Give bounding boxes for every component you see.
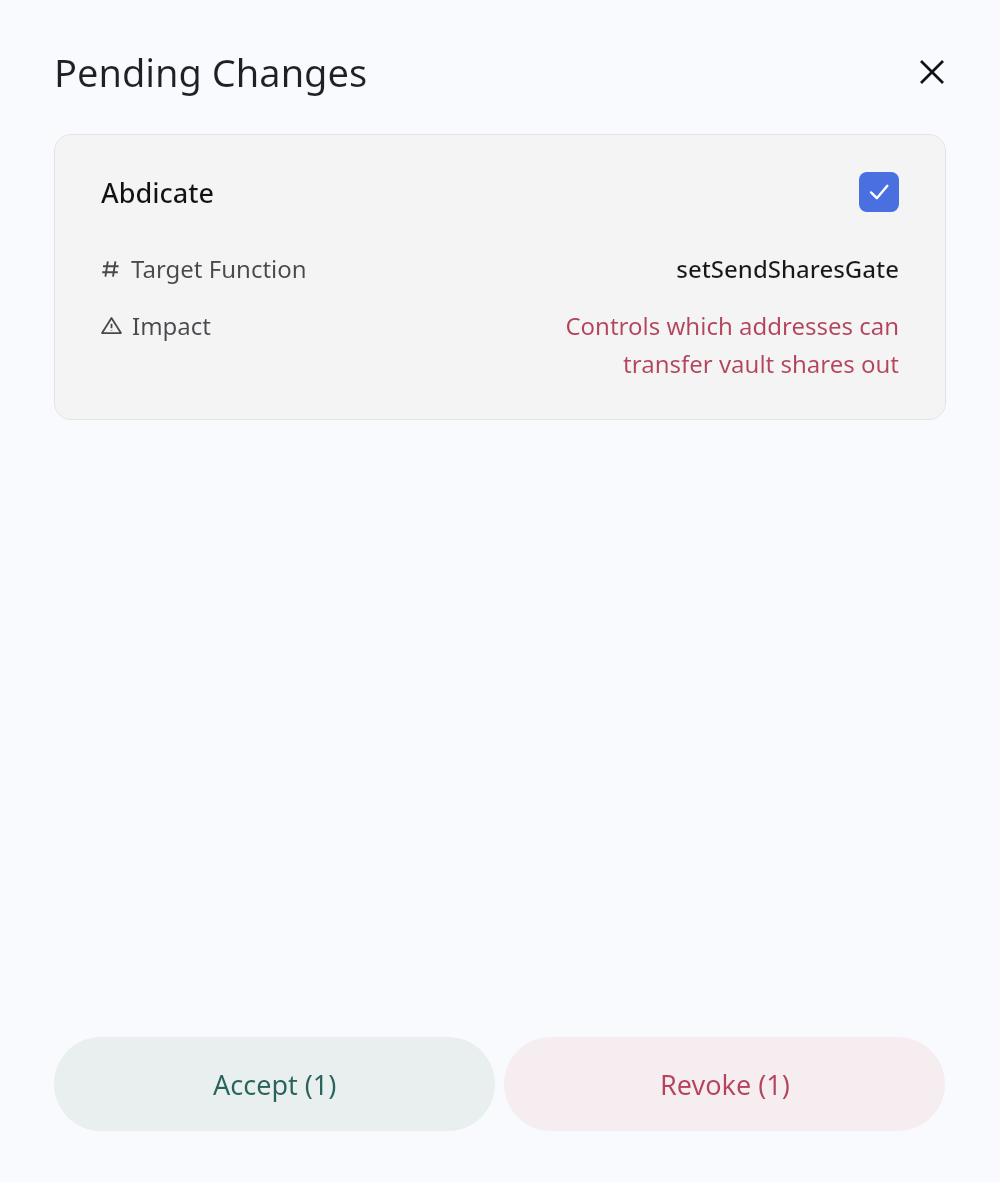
button[interactable]: Abdicate: [54, 134, 946, 420]
staticText: Abdicate: [101, 174, 214, 211]
staticText: Accept (1): [213, 1066, 337, 1103]
staticText: setSendSharesGate: [676, 252, 899, 285]
staticText: Pending Changes: [54, 46, 368, 98]
button[interactable]: Close: [910, 50, 954, 94]
staticText: Target Function: [131, 252, 307, 285]
staticText: Impact: [132, 309, 211, 342]
staticText: Revoke (1): [660, 1066, 790, 1103]
button[interactable]: Revoke (1): [504, 1037, 945, 1131]
button[interactable]: Selected: [859, 172, 899, 212]
staticText: Controls which addresses can transfer va…: [554, 309, 899, 380]
button[interactable]: Accept (1): [54, 1037, 495, 1131]
